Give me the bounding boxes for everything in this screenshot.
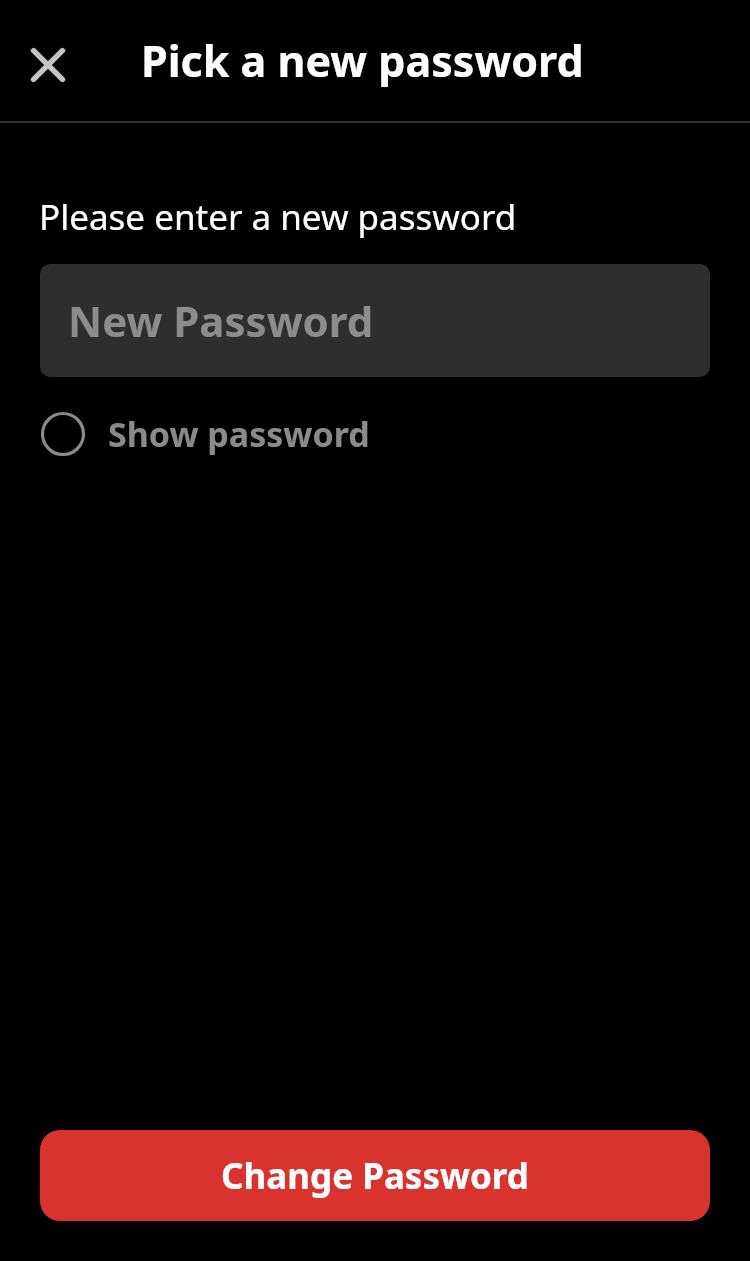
button[interactable]: Close bbox=[8, 25, 88, 105]
button[interactable]: New Password bbox=[40, 264, 710, 377]
staticText: New Password bbox=[68, 292, 374, 349]
staticText: Show password bbox=[108, 411, 370, 457]
staticText: Change Password bbox=[221, 1152, 529, 1200]
staticText: Please enter a new password bbox=[39, 193, 517, 241]
button[interactable]: Change Password bbox=[40, 1130, 710, 1221]
staticText: Pick a new password bbox=[141, 31, 584, 90]
button[interactable]: Show password bbox=[30, 397, 430, 471]
